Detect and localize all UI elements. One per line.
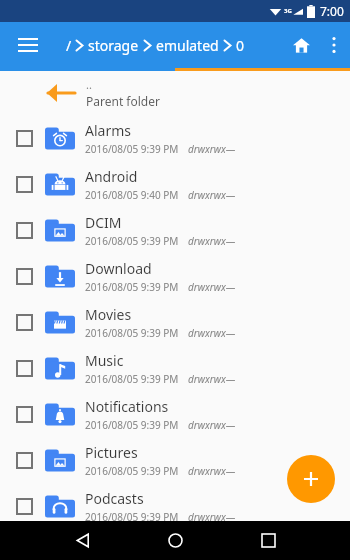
staticText: drwxrwx— — [188, 372, 236, 386]
button[interactable]: storage — [87, 36, 140, 55]
staticText: Android — [85, 167, 138, 186]
button[interactable]: Home — [155, 521, 195, 560]
staticText: 2016/08/05 9:39 PM — [85, 142, 179, 156]
staticText: Parent folder — [86, 93, 160, 109]
button[interactable]: Select Notifications — [0, 391, 350, 437]
button[interactable]: .. — [0, 71, 350, 115]
button[interactable]: Select Podcasts — [12, 494, 36, 518]
staticText: storage — [88, 36, 139, 55]
staticText: Movies — [85, 305, 132, 324]
staticText: Download — [85, 259, 152, 278]
button[interactable]: Select Music — [12, 356, 36, 380]
button[interactable]: Add — [287, 455, 335, 503]
staticText: Notifications — [85, 397, 169, 416]
staticText: drwxrwx— — [188, 510, 236, 524]
staticText: emulated — [156, 36, 219, 55]
button[interactable]: Select Download — [0, 253, 350, 299]
staticText: DCIM — [85, 213, 122, 232]
staticText: drwxrwx— — [188, 464, 236, 478]
staticText: drwxrwx— — [188, 418, 236, 432]
button[interactable]: Back — [62, 521, 102, 560]
button[interactable]: Select Movies — [12, 310, 36, 334]
button[interactable]: Select Podcasts — [0, 483, 350, 529]
staticText: .. — [86, 77, 92, 92]
staticText: drwxrwx— — [188, 280, 236, 294]
button[interactable]: Select Pictures — [0, 437, 350, 483]
staticText: 3G — [284, 7, 292, 15]
button[interactable]: Select Pictures — [12, 448, 36, 472]
button[interactable]: Select Download — [12, 264, 36, 288]
button[interactable]: Select Movies — [0, 299, 350, 345]
staticText: Music — [85, 351, 124, 370]
staticText: 2016/08/05 9:39 PM — [85, 418, 179, 432]
button[interactable]: emulated — [155, 36, 220, 55]
staticText: 2016/08/05 9:39 PM — [85, 280, 179, 294]
staticText: 2016/08/05 9:39 PM — [85, 372, 179, 386]
staticText: 2016/08/05 9:39 PM — [85, 326, 179, 340]
staticText: drwxrwx— — [188, 188, 236, 202]
staticText: 7:00 — [320, 3, 344, 19]
staticText: 2016/08/05 9:39 PM — [85, 510, 179, 524]
staticText: Pictures — [85, 443, 138, 462]
staticText: 2016/08/05 9:40 PM — [85, 188, 179, 202]
button[interactable]: Select Android — [12, 172, 36, 196]
button[interactable]: Select Alarms — [12, 126, 36, 150]
button[interactable]: Select Android — [0, 161, 350, 207]
button[interactable]: Select Alarms — [0, 115, 350, 161]
staticText: 2016/08/05 9:39 PM — [85, 234, 179, 248]
button[interactable]: Home — [286, 30, 316, 60]
staticText: 0 — [236, 36, 245, 55]
button[interactable]: Select Music — [0, 345, 350, 391]
button[interactable]: Menu — [10, 27, 46, 63]
staticText: Podcasts — [85, 489, 144, 508]
button[interactable]: Select DCIM — [0, 207, 350, 253]
button[interactable]: Recent apps — [248, 521, 288, 560]
staticText: Alarms — [85, 121, 131, 140]
staticText: / — [66, 36, 72, 55]
button[interactable]: Select DCIM — [12, 218, 36, 242]
staticText: drwxrwx— — [188, 326, 236, 340]
button[interactable]: Select Notifications — [12, 402, 36, 426]
staticText: drwxrwx— — [188, 234, 236, 248]
staticText: drwxrwx— — [188, 142, 236, 156]
button[interactable]: More options — [320, 31, 348, 59]
button[interactable]: 0 — [235, 36, 246, 55]
staticText: 2016/08/05 9:39 PM — [85, 464, 179, 478]
